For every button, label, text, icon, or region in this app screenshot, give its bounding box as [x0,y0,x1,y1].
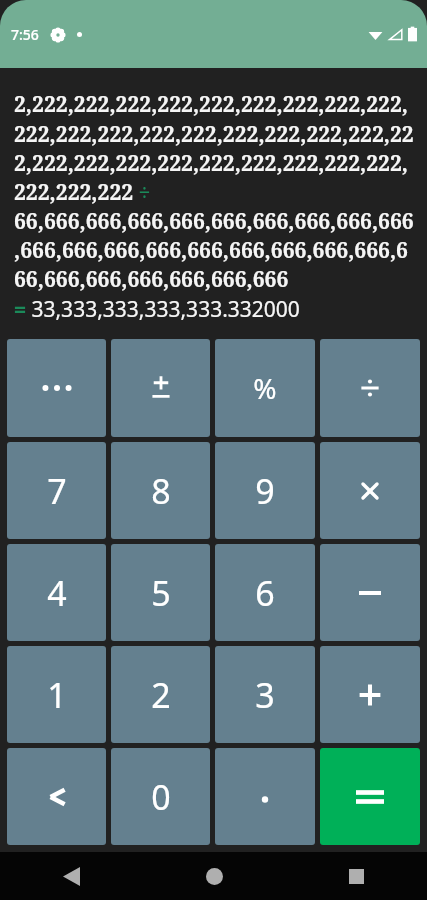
button[interactable]: 3 [215,646,315,743]
staticText: % [253,369,277,407]
button[interactable] [320,339,420,437]
staticText: 4 [47,570,67,616]
button[interactable] [320,646,420,743]
staticText: 9 [255,468,275,514]
button[interactable] [320,748,420,845]
staticText: 2,222,222,222,222,222,222,222,222,222,22… [14,90,417,293]
staticText: 8 [151,468,171,514]
staticText: 1 [47,672,67,718]
staticText: 5 [151,570,171,616]
button[interactable]: Back [0,852,143,900]
button[interactable]: More [7,339,106,437]
button[interactable]: 9 [215,442,315,539]
staticText: 2 [151,672,171,718]
staticText: 7:56 [11,25,39,44]
staticText: 6 [255,570,275,616]
button[interactable]: 7 [7,442,106,539]
button[interactable]: Recent apps [285,852,427,900]
staticText: 7 [47,468,67,514]
button[interactable]: 0 [111,748,210,845]
staticText: 3 [255,672,275,718]
button[interactable]: 6 [215,544,315,641]
button[interactable]: 5 [111,544,210,641]
button[interactable]: 4 [7,544,106,641]
button[interactable]: 8 [111,442,210,539]
button[interactable] [320,442,420,539]
button[interactable]: Home [143,852,285,900]
button[interactable] [111,339,210,437]
button[interactable] [215,748,315,845]
button[interactable]: % [215,339,315,437]
button[interactable]: 2 [111,646,210,743]
button[interactable]: Backspace [7,748,106,845]
button[interactable]: 1 [7,646,106,743]
button[interactable] [320,544,420,641]
staticText: = 33,333,333,333,333.332000 [14,295,300,324]
staticText: 0 [151,774,171,820]
